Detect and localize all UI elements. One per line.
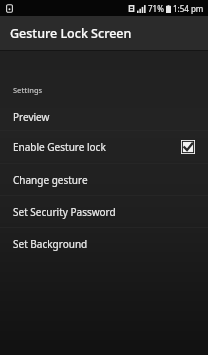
staticText: Enable Gesture lock: [13, 140, 106, 154]
staticText: Set Security Password: [13, 205, 116, 219]
button[interactable]: Change gesture: [0, 164, 208, 195]
staticText: Gesture Lock Screen: [10, 25, 132, 42]
button[interactable]: Set Background: [0, 228, 208, 259]
staticText: Change gesture: [13, 173, 88, 187]
staticText: Set Background: [13, 237, 88, 251]
button[interactable]: Set Security Password: [0, 196, 208, 227]
staticText: 71%: [148, 3, 164, 14]
staticText: Preview: [13, 110, 50, 124]
staticText: Settings: [13, 85, 43, 95]
other: Enable Gesture lock checkbox, checked: [181, 140, 195, 154]
staticText: 1:54 pm: [173, 3, 204, 14]
button[interactable]: Enable Gesture lock: [0, 131, 208, 163]
button[interactable]: Preview: [0, 104, 208, 130]
